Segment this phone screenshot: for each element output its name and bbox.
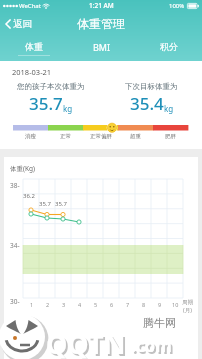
button[interactable]: 体重 bbox=[0, 36, 68, 61]
staticText: .com bbox=[131, 334, 172, 357]
staticText: 正常 bbox=[60, 133, 71, 140]
staticText: 36.2 bbox=[23, 192, 35, 200]
staticText: 周期 bbox=[182, 299, 193, 306]
staticText: 35.7 bbox=[29, 92, 63, 115]
staticText: 9 bbox=[158, 301, 162, 308]
staticText: 10 bbox=[172, 301, 179, 308]
staticText: 正常偏胖 bbox=[90, 133, 112, 140]
staticText: 30- bbox=[10, 297, 20, 306]
staticText: 1:21 AM bbox=[89, 1, 114, 10]
staticText: 2018-03-21 bbox=[12, 67, 52, 77]
button[interactable]: BMI bbox=[68, 36, 135, 61]
staticText: 肥胖 bbox=[165, 133, 176, 140]
staticText: 体重 bbox=[25, 41, 43, 52]
staticText: 返回 bbox=[13, 18, 32, 30]
staticText: 5 bbox=[94, 301, 98, 308]
staticText: QQTN bbox=[48, 327, 128, 359]
staticText: 34- bbox=[10, 241, 20, 250]
staticText: 6 bbox=[110, 301, 114, 308]
staticText: kg bbox=[164, 103, 174, 114]
staticText: 下次目标体重为 bbox=[125, 82, 178, 91]
staticText: 35.7 bbox=[55, 200, 67, 208]
staticText: 腾牛网 bbox=[143, 316, 176, 330]
staticText: .com bbox=[133, 336, 174, 359]
staticText: WeChat bbox=[19, 2, 41, 10]
staticText: 8 bbox=[142, 301, 146, 308]
staticText: 2 bbox=[46, 301, 50, 308]
staticText: 100% bbox=[169, 2, 185, 10]
staticText: 积分 bbox=[160, 41, 178, 52]
staticText: 3 bbox=[62, 301, 66, 308]
staticText: 35.4 bbox=[130, 92, 164, 115]
staticText: 体重(Kg) bbox=[10, 164, 35, 173]
staticText: 体重管理 bbox=[77, 16, 125, 31]
staticText: (月) bbox=[183, 306, 192, 314]
staticText: 超重 bbox=[130, 133, 141, 140]
staticText: 35.7 bbox=[39, 200, 51, 208]
staticText: 4 bbox=[78, 301, 82, 308]
staticText: 消瘦 bbox=[25, 133, 36, 140]
staticText: kg bbox=[63, 103, 73, 114]
button[interactable]: 返回 bbox=[0, 15, 38, 33]
staticText: 您的孩子本次体重为 bbox=[17, 82, 85, 91]
button[interactable]: 积分 bbox=[135, 36, 202, 61]
staticText: 7 bbox=[126, 301, 130, 308]
staticText: 38- bbox=[10, 181, 20, 190]
staticText: QQTN bbox=[46, 325, 126, 359]
staticText: BMI bbox=[93, 41, 111, 53]
staticText: 1 bbox=[30, 301, 34, 308]
